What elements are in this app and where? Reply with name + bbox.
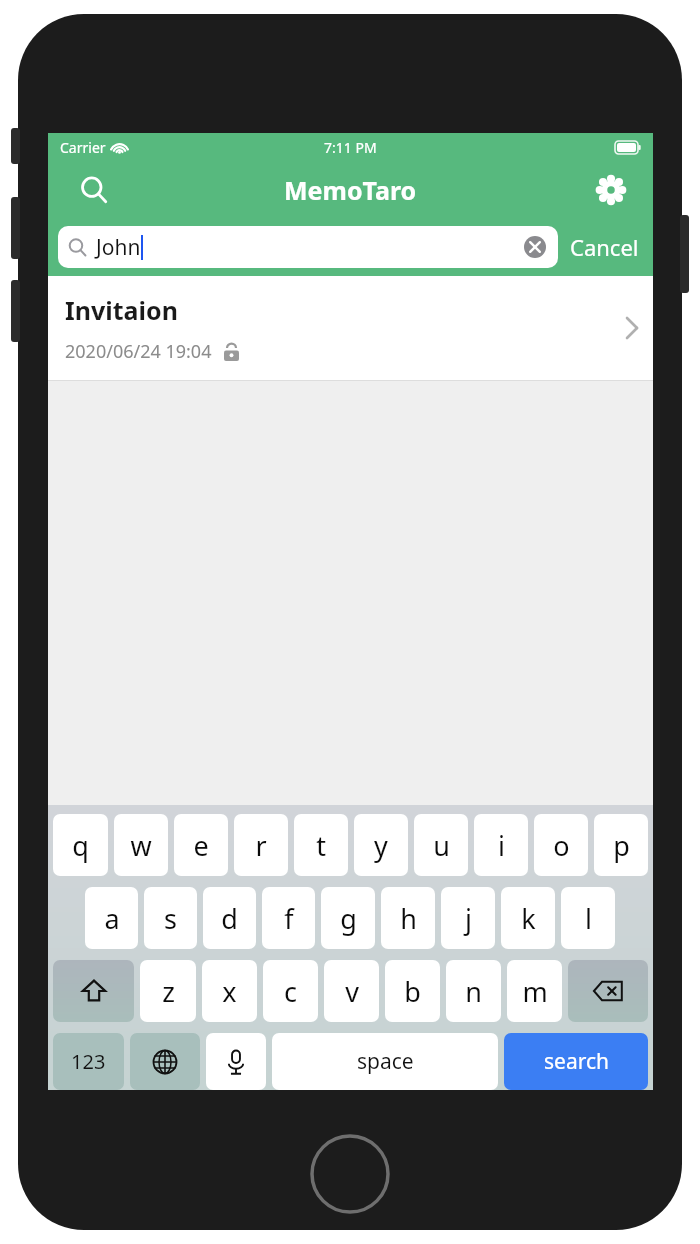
button[interactable]: f (262, 887, 315, 949)
button[interactable]: Shift (53, 960, 134, 1022)
staticText: t (316, 827, 326, 864)
button[interactable]: s (144, 887, 197, 949)
button[interactable]: i (474, 814, 528, 876)
button[interactable]: Cancel (558, 232, 643, 262)
staticText: l (585, 900, 592, 937)
staticText: Invitaion (65, 293, 178, 327)
staticText: 7:11 PM (324, 138, 377, 157)
button[interactable]: r (234, 814, 288, 876)
staticText: f (284, 900, 294, 937)
button[interactable]: a (85, 887, 138, 949)
button[interactable]: k (501, 887, 555, 949)
staticText: e (193, 827, 209, 864)
button[interactable]: 123 (53, 1033, 124, 1090)
staticText: s (164, 900, 177, 937)
button[interactable]: w (114, 814, 168, 876)
staticText: m (522, 973, 548, 1010)
staticText: 123 (71, 1048, 106, 1075)
staticText: c (284, 973, 297, 1010)
button[interactable]: Invitaion (48, 276, 653, 381)
staticText: Carrier (60, 138, 106, 157)
button[interactable]: q (53, 814, 108, 876)
staticText: MemoTaro (284, 173, 417, 207)
staticText: z (162, 973, 175, 1010)
staticText: q (72, 827, 89, 864)
button[interactable]: Next keyboard (130, 1033, 200, 1090)
staticText: i (498, 827, 505, 864)
staticText: g (340, 900, 357, 937)
button[interactable]: z (140, 960, 196, 1022)
button[interactable]: t (294, 814, 348, 876)
staticText: w (130, 827, 152, 864)
button[interactable]: o (534, 814, 588, 876)
staticText: b (404, 973, 421, 1010)
button[interactable]: search (504, 1033, 648, 1090)
staticText: o (553, 827, 570, 864)
button[interactable]: d (203, 887, 256, 949)
staticText: d (221, 900, 238, 937)
button[interactable]: John (58, 226, 558, 268)
staticText: h (400, 900, 417, 937)
button[interactable]: e (174, 814, 228, 876)
staticText: v (345, 973, 359, 1010)
button[interactable]: b (385, 960, 440, 1022)
staticText: p (613, 827, 630, 864)
button[interactable]: space (272, 1033, 498, 1090)
button[interactable]: Backspace (568, 960, 648, 1022)
button[interactable]: p (594, 814, 648, 876)
staticText: u (433, 827, 450, 864)
button[interactable]: Clear text (522, 234, 548, 260)
button[interactable]: v (324, 960, 379, 1022)
staticText: Cancel (570, 232, 639, 262)
button[interactable]: u (414, 814, 468, 876)
button[interactable]: x (202, 960, 257, 1022)
button[interactable]: g (321, 887, 375, 949)
staticText: r (255, 827, 267, 864)
staticText: a (104, 900, 120, 937)
button[interactable]: n (446, 960, 501, 1022)
button[interactable]: y (354, 814, 408, 876)
staticText: j (465, 900, 472, 937)
button[interactable]: j (441, 887, 495, 949)
staticText: y (374, 827, 388, 864)
button[interactable]: Settings (591, 170, 631, 210)
staticText: k (521, 900, 536, 937)
staticText: space (357, 1047, 414, 1076)
staticText: x (222, 973, 237, 1010)
button[interactable]: Dictation (206, 1033, 266, 1090)
staticText: n (465, 973, 482, 1010)
staticText: search (544, 1047, 609, 1076)
button[interactable]: c (263, 960, 318, 1022)
button[interactable]: h (381, 887, 435, 949)
button[interactable]: m (507, 960, 562, 1022)
button[interactable]: l (561, 887, 615, 949)
button[interactable]: Search (74, 170, 114, 210)
staticText: 2020/06/24 19:04 (65, 339, 212, 364)
staticText: John (96, 233, 141, 262)
